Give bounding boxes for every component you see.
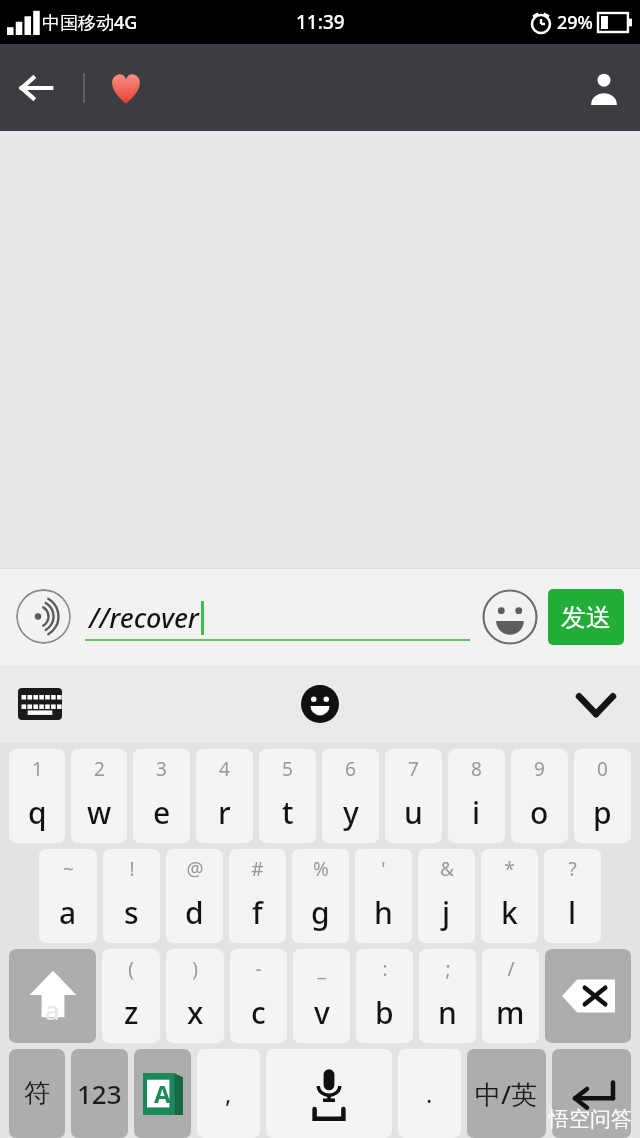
button[interactable]: ; (419, 949, 476, 1043)
staticText: ? (568, 856, 577, 882)
button[interactable]: 中/英 (467, 1049, 546, 1138)
button[interactable]: , (197, 1049, 260, 1138)
staticText: : (382, 956, 388, 982)
button[interactable]: Profile (568, 52, 640, 124)
button[interactable]: Shift (9, 949, 96, 1043)
button[interactable]: : (356, 949, 413, 1043)
staticText: 3 (156, 756, 167, 782)
staticText: b (375, 992, 394, 1033)
staticText: 11:39 (296, 9, 345, 35)
staticText: d (185, 892, 204, 933)
staticText: l (568, 892, 577, 933)
button[interactable]: 8 (448, 749, 505, 843)
button[interactable]: 9 (511, 749, 568, 843)
button[interactable]: _ (293, 949, 350, 1043)
staticText: ) (192, 956, 198, 982)
staticText: c (251, 992, 266, 1033)
staticText: 2 (94, 756, 105, 782)
button[interactable]: Voice input (16, 589, 71, 644)
button[interactable]: ~ (39, 849, 97, 943)
staticText: . (426, 1077, 433, 1110)
staticText: 1 (32, 756, 43, 782)
button[interactable]: Keyboard layout (10, 674, 70, 734)
button[interactable]: 6 (322, 749, 379, 843)
staticText: e (153, 792, 171, 833)
staticText: x (187, 992, 204, 1033)
button[interactable]: //recover (85, 587, 470, 647)
button[interactable]: / (482, 949, 539, 1043)
staticText: w (87, 792, 112, 833)
staticText: t (282, 792, 294, 833)
button[interactable]: @ (166, 849, 223, 943)
staticText: p (593, 792, 612, 833)
button[interactable]: 3 (133, 749, 190, 843)
staticText: 123 (77, 1076, 122, 1111)
staticText: A (154, 1077, 171, 1110)
staticText: , (225, 1077, 232, 1110)
button[interactable]: & (418, 849, 475, 943)
staticText: y (343, 792, 359, 833)
staticText: 0 (597, 756, 608, 782)
staticText: 29% (557, 10, 593, 35)
staticText: 中国移动4G (42, 10, 138, 35)
staticText: g (311, 892, 330, 933)
button[interactable]: Backspace (545, 949, 631, 1043)
staticText: 9 (534, 756, 545, 782)
staticText: k (501, 892, 518, 933)
staticText: f (252, 892, 263, 933)
staticText: a (45, 992, 60, 1027)
button[interactable]: Enter (552, 1049, 631, 1138)
staticText: u (404, 792, 423, 833)
button[interactable]: Emoji (482, 589, 538, 645)
button[interactable]: % (292, 849, 349, 943)
staticText: m (496, 992, 525, 1033)
button[interactable]: * (481, 849, 538, 943)
button[interactable]: ? (544, 849, 601, 943)
staticText: @ (186, 856, 204, 882)
button[interactable]: 1 (9, 749, 65, 843)
button[interactable]: ' (355, 849, 412, 943)
staticText: r (218, 792, 231, 833)
button[interactable]: 2 (71, 749, 127, 843)
staticText: s (124, 892, 139, 933)
button[interactable]: ! (103, 849, 160, 943)
staticText: ' (381, 856, 386, 882)
staticText: % (313, 856, 329, 882)
button[interactable]: Space (266, 1049, 392, 1138)
staticText: 5 (282, 756, 293, 782)
staticText: ! (129, 856, 135, 882)
staticText: ~ (63, 856, 74, 882)
button[interactable]: Emoji keyboard (290, 674, 350, 734)
button[interactable]: 5 (259, 749, 316, 843)
button[interactable]: 7 (385, 749, 442, 843)
staticText: 符 (24, 1077, 50, 1110)
staticText: # (251, 856, 264, 882)
staticText: 7 (408, 756, 419, 782)
button[interactable]: 符 (9, 1049, 65, 1138)
staticText: ; (445, 956, 451, 982)
button[interactable]: ) (166, 949, 224, 1043)
staticText: 8 (471, 756, 482, 782)
button[interactable]: Hide keyboard (566, 674, 626, 734)
button[interactable]: Input language (134, 1049, 191, 1138)
button[interactable]: 发送 (548, 589, 624, 645)
staticText: i (472, 792, 481, 833)
staticText: 6 (345, 756, 356, 782)
button[interactable]: # (229, 849, 286, 943)
staticText: //recover (89, 599, 199, 636)
staticText: a (59, 892, 77, 933)
button[interactable]: 123 (71, 1049, 128, 1138)
button[interactable]: - (230, 949, 287, 1043)
button[interactable]: ( (102, 949, 160, 1043)
staticText: 4 (219, 756, 230, 782)
staticText: * (504, 856, 515, 882)
staticText: _ (317, 956, 326, 982)
button[interactable]: 0 (574, 749, 631, 843)
staticText: q (28, 792, 47, 833)
button[interactable]: . (398, 1049, 461, 1138)
button[interactable]: Back (0, 52, 72, 124)
button[interactable]: 4 (196, 749, 253, 843)
staticText: 悟空问答 (548, 1106, 632, 1132)
staticText: h (374, 892, 393, 933)
staticText: n (438, 992, 457, 1033)
